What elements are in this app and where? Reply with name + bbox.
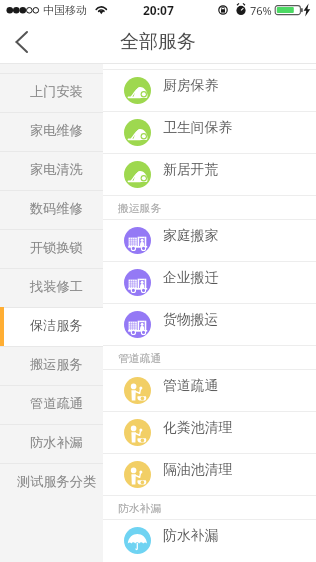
- staticText: 管道疏通: [118, 352, 162, 366]
- button[interactable]: 测试服务分类: [0, 463, 103, 502]
- staticText: 保洁服务: [30, 317, 83, 334]
- button[interactable]: 企业搬迁: [103, 261, 316, 303]
- staticText: 卫生间保养: [163, 119, 232, 136]
- button[interactable]: 搬运服务: [0, 346, 103, 385]
- button[interactable]: 卫生间保养: [103, 111, 316, 153]
- staticText: 中国移动: [43, 3, 87, 17]
- button[interactable]: Back: [0, 20, 48, 64]
- staticText: 防水补漏: [163, 527, 219, 544]
- button[interactable]: 防水补漏: [103, 519, 316, 561]
- button[interactable]: 新居开荒: [103, 153, 316, 195]
- staticText: 家电清洗: [30, 161, 83, 178]
- button[interactable]: 上门安装: [0, 73, 103, 112]
- button[interactable]: 管道疏通: [0, 385, 103, 424]
- staticText: 隔油池清理: [163, 461, 232, 478]
- staticText: 厨房保养: [163, 77, 219, 94]
- staticText: 开锁换锁: [30, 239, 83, 256]
- staticText: 企业搬迁: [163, 269, 219, 286]
- button[interactable]: 化粪池清理: [103, 411, 316, 453]
- button[interactable]: 管道疏通: [103, 369, 316, 411]
- staticText: 防水补漏: [30, 434, 83, 451]
- staticText: 管道疏通: [163, 377, 219, 394]
- button[interactable]: 防水补漏: [0, 424, 103, 463]
- staticText: 家庭搬家: [163, 227, 219, 244]
- button[interactable]: 找装修工: [0, 268, 103, 307]
- button[interactable]: 货物搬运: [103, 303, 316, 345]
- staticText: 20:07: [143, 2, 174, 18]
- button[interactable]: 厨房保养: [103, 69, 316, 111]
- staticText: 数码维修: [30, 200, 83, 217]
- staticText: 上门安装: [30, 83, 83, 100]
- button[interactable]: 家庭搬家: [103, 219, 316, 261]
- staticText: 货物搬运: [163, 311, 219, 328]
- staticText: 全部服务: [120, 30, 196, 54]
- button[interactable]: 保洁服务: [0, 307, 103, 346]
- button[interactable]: 家电维修: [0, 112, 103, 151]
- staticText: 化粪池清理: [163, 419, 232, 436]
- staticText: 新居开荒: [163, 161, 219, 178]
- staticText: 找装修工: [30, 278, 83, 295]
- staticText: 管道疏通: [30, 395, 83, 412]
- staticText: 家电维修: [30, 122, 83, 139]
- staticText: 76%: [250, 3, 272, 18]
- staticText: 测试服务分类: [17, 473, 97, 490]
- staticText: 搬运服务: [30, 356, 83, 373]
- button[interactable]: 隔油池清理: [103, 453, 316, 495]
- button[interactable]: 开锁换锁: [0, 229, 103, 268]
- staticText: 搬运服务: [118, 202, 162, 216]
- button[interactable]: 家电清洗: [0, 151, 103, 190]
- staticText: 防水补漏: [118, 502, 162, 516]
- button[interactable]: 数码维修: [0, 190, 103, 229]
